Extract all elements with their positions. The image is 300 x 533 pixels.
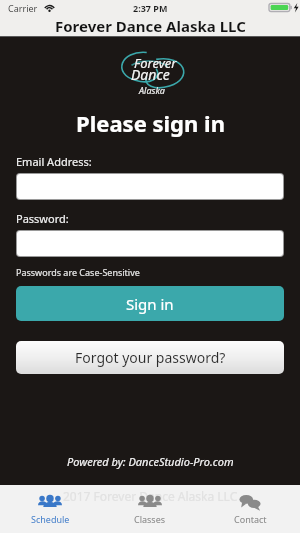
staticText: Dance <box>131 65 170 84</box>
other: Schedule <box>38 494 62 511</box>
staticText: Powered by: DanceStudio-Pro.com <box>67 454 234 469</box>
staticText: Forever Dance Alaska LLC <box>55 16 246 36</box>
staticText: Email Address: <box>16 154 92 169</box>
staticText: Contact <box>234 513 267 525</box>
staticText: Password: <box>16 211 69 226</box>
staticText: Please sign in <box>76 108 225 138</box>
button[interactable]: Contact <box>200 485 300 533</box>
staticText: Forever <box>134 54 177 72</box>
staticText: Carrier <box>8 2 38 14</box>
other: Contact <box>239 494 261 511</box>
staticText: Alaska <box>139 84 165 96</box>
button[interactable]: Classes <box>100 485 200 533</box>
staticText: Schedule <box>31 513 70 525</box>
button[interactable]: Sign in <box>16 286 284 321</box>
staticText: 2017 Forever Dance Alaska LLC <box>63 488 238 504</box>
staticText: Passwords are Case-Sensitive <box>16 266 140 278</box>
staticText: Forgot your password? <box>75 348 226 367</box>
button[interactable]: Forgot your password? <box>16 341 284 374</box>
button[interactable]: Schedule <box>0 485 100 533</box>
staticText: Sign in <box>126 294 174 314</box>
other: Classes <box>138 494 162 511</box>
staticText: Classes <box>134 513 166 525</box>
staticText: 2:37 PM <box>133 2 168 14</box>
